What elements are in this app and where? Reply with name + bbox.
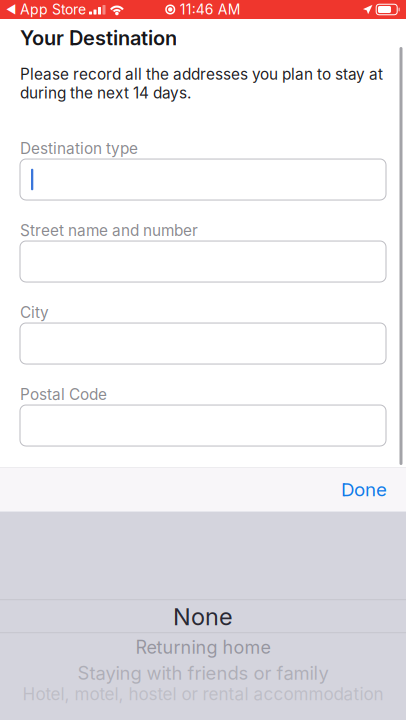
staticText: City — [20, 303, 49, 322]
button[interactable]: Staying with friends or family — [0, 661, 406, 685]
button[interactable]: Done — [331, 468, 397, 511]
staticText: Staying with friends or family — [77, 662, 328, 684]
staticText: None — [173, 602, 233, 631]
staticText: Hotel, motel, hostel or rental accommoda… — [22, 684, 383, 704]
staticText: Done — [341, 478, 387, 501]
staticText: Destination type — [20, 139, 138, 158]
staticText: Your Destination — [20, 26, 177, 50]
staticText: App Store — [16, 1, 86, 18]
staticText: ◀ — [6, 3, 16, 16]
button[interactable]: Hotel, motel, hostel or rental accommoda… — [0, 685, 406, 703]
button[interactable]: None — [0, 600, 406, 633]
staticText: Postal Code — [20, 385, 107, 404]
staticText: Returning home — [135, 636, 270, 658]
staticText: Street name and number — [20, 221, 198, 240]
staticText: Please record all the addresses you plan… — [20, 65, 383, 102]
button[interactable]: Returning home — [0, 633, 406, 661]
staticText: 11:46 AM — [180, 1, 241, 18]
